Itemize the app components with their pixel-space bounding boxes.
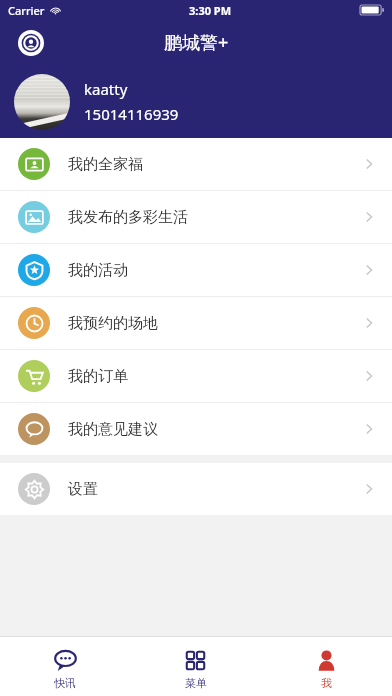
- button[interactable]: Police badge: [14, 26, 48, 60]
- button[interactable]: 我的全家福: [0, 138, 392, 190]
- staticText: 我预约的场地: [68, 314, 158, 333]
- button[interactable]: 菜单: [130, 643, 261, 690]
- staticText: 鹏城警+: [164, 30, 229, 55]
- staticText: kaatty: [84, 79, 128, 99]
- button[interactable]: 我的活动: [0, 244, 392, 296]
- staticText: 我的活动: [68, 261, 128, 280]
- button[interactable]: 我的订单: [0, 350, 392, 402]
- staticText: 3:30 PM: [189, 3, 232, 18]
- button[interactable]: 我的意见建议: [0, 403, 392, 455]
- button[interactable]: 我: [261, 643, 392, 690]
- staticText: 15014116939: [84, 104, 179, 124]
- button[interactable]: 快讯: [0, 643, 130, 690]
- button[interactable]: 我发布的多彩生活: [0, 191, 392, 243]
- staticText: 我的全家福: [68, 155, 143, 174]
- staticText: 我: [321, 676, 332, 690]
- staticText: 我的订单: [68, 367, 128, 386]
- staticText: Carrier: [8, 3, 45, 18]
- button[interactable]: kaatty: [0, 65, 392, 138]
- staticText: 我发布的多彩生活: [68, 208, 188, 227]
- button[interactable]: 设置: [0, 463, 392, 515]
- staticText: 我的意见建议: [68, 420, 158, 439]
- staticText: 设置: [68, 480, 98, 499]
- staticText: 快讯: [54, 676, 76, 690]
- button[interactable]: 我预约的场地: [0, 297, 392, 349]
- staticText: 菜单: [185, 676, 207, 690]
